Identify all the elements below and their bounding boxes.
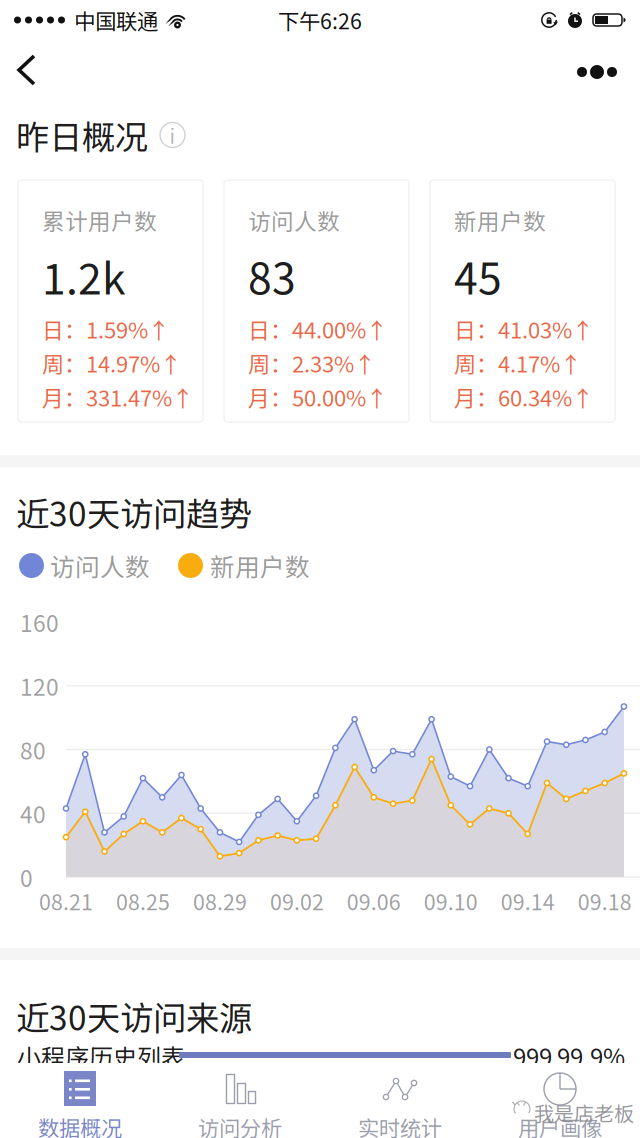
staticText: i [169,120,175,149]
staticText: 160 [20,606,59,638]
staticText: 周：2.33%↑ [248,347,376,379]
staticText: 新用户数 [210,548,310,583]
button[interactable]: Back [0,40,60,100]
staticText: 09.02 [270,886,324,916]
staticText: 120 [20,669,59,702]
staticText: 08.29 [193,886,247,916]
staticText: 周：4.17%↑ [454,347,582,379]
staticText: 0 [20,861,33,893]
button[interactable]: More [561,40,640,100]
staticText: 近30天访问趋势 [16,488,252,536]
button[interactable]: 用户画像 [480,1063,640,1138]
staticText: 09.14 [501,886,555,916]
staticText: 下午6:26 [278,5,362,35]
staticText: 月：60.34%↑ [454,381,594,413]
staticText: 45 [454,245,502,307]
staticText: 09.06 [347,886,401,916]
staticText: 实时统计 [358,1112,442,1138]
button[interactable]: 访问分析 [160,1063,320,1138]
staticText: 中国联通 [74,5,158,35]
staticText: 昨日概况 [16,111,148,159]
staticText: 访问人数 [50,548,150,583]
staticText: 08.21 [39,886,93,916]
staticText: 日：1.59%↑ [42,313,170,345]
staticText: 访问分析 [198,1112,282,1138]
staticText: 新用户数 [454,204,546,236]
staticText: 访问人数 [248,204,340,236]
staticText: 999 99.9% [513,1039,625,1073]
staticText: 月：331.47%↑ [42,381,194,413]
staticText: 80 [20,733,46,766]
staticText: 08.25 [116,886,170,916]
staticText: 累计用户数 [42,204,157,236]
staticText: 日：41.03%↑ [454,313,594,345]
button[interactable]: 数据概况 [0,1063,160,1138]
staticText: 09.10 [424,886,478,916]
button[interactable]: 实时统计 [320,1063,480,1138]
staticText: 日：44.00%↑ [248,313,388,345]
staticText: 1.2k [42,245,126,307]
staticText: 近30天访问来源 [16,992,252,1040]
staticText: 我是店老板 [534,1098,634,1127]
staticText: 周：14.97%↑ [42,347,182,379]
staticText: 月：50.00%↑ [248,381,388,413]
staticText: 小程序历史列表 [17,1039,185,1073]
staticText: 数据概况 [38,1112,122,1138]
staticText: 83 [248,245,296,307]
staticText: 用户画像 [518,1112,602,1138]
staticText: 40 [20,797,46,830]
staticText: 09.18 [578,886,632,916]
